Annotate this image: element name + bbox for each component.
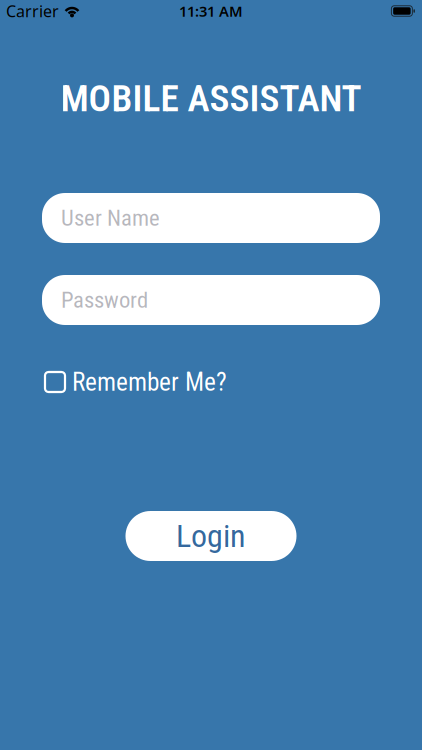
button[interactable]: Password (42, 275, 380, 325)
button[interactable]: User Name (42, 193, 380, 243)
staticText: Login (176, 517, 246, 555)
staticText: 11:31 AM (179, 1, 243, 21)
button[interactable]: Remember Me? (0, 369, 422, 395)
staticText: User Name (61, 205, 160, 231)
staticText: Carrier (6, 0, 59, 22)
staticText: Remember Me? (72, 367, 227, 397)
staticText: MOBILE ASSISTANT (60, 77, 361, 120)
staticText: Password (61, 287, 148, 313)
button[interactable]: Login (125, 511, 296, 561)
